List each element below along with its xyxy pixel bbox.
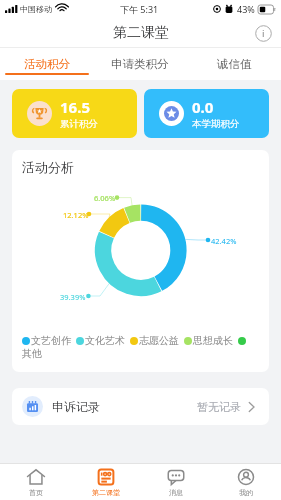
staticText: 第二课堂 — [113, 24, 169, 42]
staticText: 活动积分 — [24, 57, 70, 71]
staticText: 文艺创作 — [31, 334, 71, 347]
staticText: 0.0 — [192, 97, 214, 117]
button[interactable]: 申诉记录 — [12, 388, 269, 425]
staticText: 43% — [237, 3, 255, 15]
button[interactable]: 首页 — [0, 464, 71, 500]
staticText: 文化艺术 — [85, 334, 125, 347]
button[interactable]: 活动积分 — [0, 48, 93, 80]
button[interactable]: 第二课堂 — [71, 464, 141, 500]
staticText: 申诉记录 — [52, 399, 100, 414]
staticText: 42.42% — [211, 236, 237, 246]
staticText: 其他 — [22, 347, 42, 360]
staticText: 我的 — [239, 488, 253, 497]
button[interactable]: 诚信值 — [187, 48, 281, 80]
staticText: 本学期积分 — [192, 118, 240, 130]
button[interactable]: 消息 — [141, 464, 211, 500]
staticText: 首页 — [29, 488, 43, 497]
staticText: 16.5 — [60, 97, 90, 117]
staticText: 累计积分 — [60, 118, 98, 130]
staticText: 活动分析 — [22, 159, 74, 175]
staticText: 思想成长 — [193, 334, 233, 347]
button[interactable]: Info — [255, 25, 272, 42]
staticText: i — [262, 27, 265, 40]
staticText: 志愿公益 — [139, 334, 179, 347]
button[interactable]: 16.5 — [12, 89, 137, 138]
button[interactable]: 0.0 — [144, 89, 269, 138]
staticText: 39.39% — [60, 292, 86, 302]
staticText: 第二课堂 — [92, 488, 120, 497]
staticText: 申请类积分 — [111, 57, 169, 71]
staticText: 暂无记录 — [197, 400, 241, 414]
staticText: 6.06% — [94, 193, 116, 203]
staticText: 消息 — [169, 488, 183, 497]
staticText: 下午 5:31 — [120, 3, 159, 15]
staticText: 中国移动 — [20, 4, 52, 14]
staticText: 12.12% — [63, 210, 89, 220]
button[interactable]: 我的 — [211, 464, 281, 500]
staticText: 诚信值 — [217, 57, 252, 71]
button[interactable]: 申请类积分 — [93, 48, 187, 80]
